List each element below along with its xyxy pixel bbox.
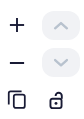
button[interactable]: Zoom in (3, 11, 31, 39)
button[interactable]: Previous (42, 11, 80, 40)
button[interactable]: Unlock (47, 88, 65, 110)
button[interactable]: Next (42, 48, 80, 77)
button[interactable]: Copy (3, 87, 27, 111)
button[interactable]: Zoom out (3, 49, 31, 77)
